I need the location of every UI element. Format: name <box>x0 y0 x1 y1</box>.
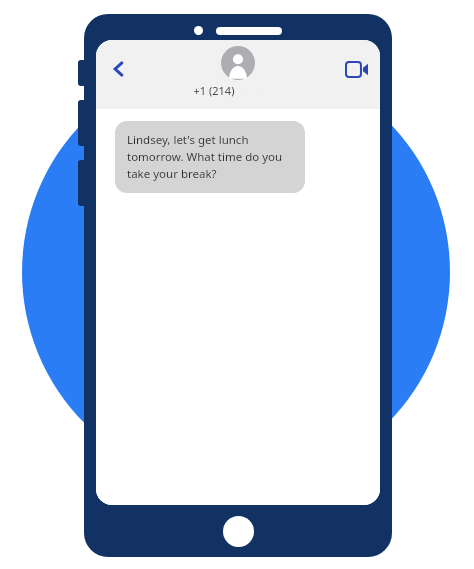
staticText: +1 (214) <box>192 83 236 98</box>
button[interactable]: Lindsey, let's get lunch tomorrow. What … <box>115 121 305 193</box>
staticText: Lindsey, let's get lunch tomorrow. What … <box>127 132 293 182</box>
button[interactable]: Home <box>223 516 254 547</box>
button[interactable]: Video call <box>340 52 374 86</box>
button[interactable]: Back <box>102 52 136 86</box>
